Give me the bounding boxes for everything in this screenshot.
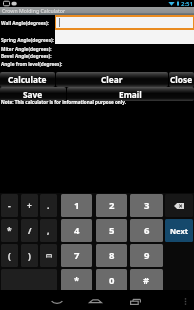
staticText: Note: This calculator is for information…: [1, 99, 126, 105]
button[interactable]: 0: [96, 269, 127, 292]
staticText: 2:51: [181, 0, 193, 7]
button[interactable]: 7: [61, 244, 92, 267]
button[interactable]: Space: [1, 269, 57, 292]
button[interactable]: Next: [165, 219, 193, 242]
staticText: Spring Angle(degrees):: [1, 37, 54, 43]
button[interactable]: Backspace: [165, 194, 193, 217]
staticText: 1: [74, 199, 80, 212]
button[interactable]: ): [21, 244, 38, 267]
button[interactable]: 5: [96, 219, 127, 242]
button[interactable]: 8: [96, 244, 127, 267]
button[interactable]: Calculate: [0, 72, 55, 87]
staticText: 0: [109, 274, 115, 287]
staticText: 3: [144, 199, 150, 212]
staticText: +: [27, 200, 32, 212]
staticText: Clear: [101, 74, 123, 85]
button[interactable]: [55, 15, 194, 30]
button[interactable]: Home: [77, 291, 113, 310]
button[interactable]: Back: [39, 291, 75, 310]
button[interactable]: 6: [130, 219, 163, 242]
button[interactable]: 3: [130, 194, 163, 217]
staticText: *: [74, 274, 80, 287]
staticText: Crown Molding Calculator: [2, 7, 66, 14]
staticText: *: [7, 225, 12, 237]
button[interactable]: Email: [67, 87, 194, 101]
staticText: Miter Angle(degrees):: [1, 46, 52, 52]
staticText: #: [143, 274, 150, 287]
button[interactable]: Save: [0, 87, 66, 101]
staticText: /: [28, 225, 32, 237]
staticText: (: [8, 250, 11, 262]
staticText: 4: [74, 224, 80, 237]
button[interactable]: 9: [130, 244, 163, 267]
staticText: Calculate: [8, 74, 47, 85]
button[interactable]: 2: [96, 194, 127, 217]
staticText: 9: [144, 249, 150, 262]
button[interactable]: -: [1, 194, 18, 217]
staticText: Wall Angle(degrees):: [1, 20, 49, 26]
button[interactable]: [40, 244, 57, 267]
button[interactable]: More options: [175, 291, 194, 310]
button[interactable]: ,: [40, 219, 57, 242]
staticText: Bevel Angle(degrees):: [1, 53, 52, 59]
staticText: 5: [109, 224, 115, 237]
staticText: 8: [109, 249, 115, 262]
staticText: Angle from level(degrees):: [1, 61, 63, 67]
button[interactable]: 4: [61, 219, 92, 242]
staticText: Save: [23, 89, 43, 100]
staticText: 2: [109, 199, 115, 212]
staticText: 7: [74, 249, 80, 262]
staticText: Next: [170, 226, 189, 236]
button[interactable]: Close: [169, 72, 194, 87]
staticText: 6: [144, 224, 150, 237]
staticText: Email: [119, 89, 142, 100]
staticText: Close: [170, 74, 193, 85]
button[interactable]: +: [21, 194, 38, 217]
button[interactable]: 1: [61, 194, 92, 217]
button[interactable]: Clear: [56, 72, 168, 87]
staticText: .: [47, 200, 50, 212]
button[interactable]: *: [61, 269, 92, 292]
button[interactable]: .: [40, 194, 57, 217]
staticText: ): [28, 250, 31, 262]
staticText: -: [8, 200, 11, 212]
button[interactable]: /: [21, 219, 38, 242]
staticText: ,: [47, 225, 50, 237]
button[interactable]: #: [130, 269, 163, 292]
button[interactable]: Recents: [117, 291, 153, 310]
button[interactable]: (: [1, 244, 18, 267]
button[interactable]: *: [1, 219, 18, 242]
